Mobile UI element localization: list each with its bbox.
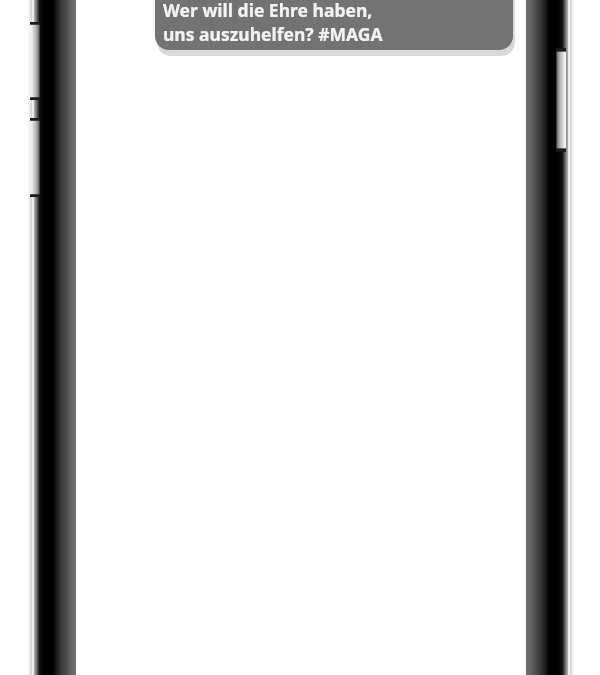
staticText: uns auszuhelfen? #MAGA xyxy=(163,22,383,46)
button[interactable]: Power xyxy=(556,48,566,152)
button[interactable]: Volume down xyxy=(30,118,40,197)
button[interactable]: Volume up xyxy=(30,22,40,100)
button[interactable]: Wer will die Ehre haben, xyxy=(155,0,513,50)
staticText: Wer will die Ehre haben, xyxy=(163,0,373,22)
